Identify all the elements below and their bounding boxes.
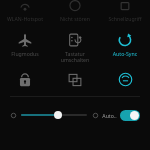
other: Low brightness [10, 112, 17, 119]
staticText: WLAN-Hotspot [0, 15, 50, 22]
staticText: Tastatur umschalten [50, 50, 100, 63]
staticText: Flugmodus [0, 50, 50, 57]
button[interactable]: Tastatur umschalten [50, 32, 100, 64]
button[interactable]: Flugmodus [0, 32, 50, 58]
button[interactable]: Quick setting [100, 72, 150, 87]
button[interactable]: Auto-Sync [100, 32, 150, 58]
button[interactable] [21, 109, 87, 121]
staticText: Auto-Sync [100, 50, 150, 57]
staticText: Auto.. [102, 112, 117, 119]
other: High brightness [92, 112, 99, 119]
button[interactable]: Quick setting [0, 72, 50, 88]
staticText: Nicht stören [50, 15, 100, 22]
button[interactable]: Quick setting [50, 72, 100, 88]
button[interactable]: Auto.. [102, 110, 140, 121]
staticText: Schnellzugriff [100, 15, 150, 22]
